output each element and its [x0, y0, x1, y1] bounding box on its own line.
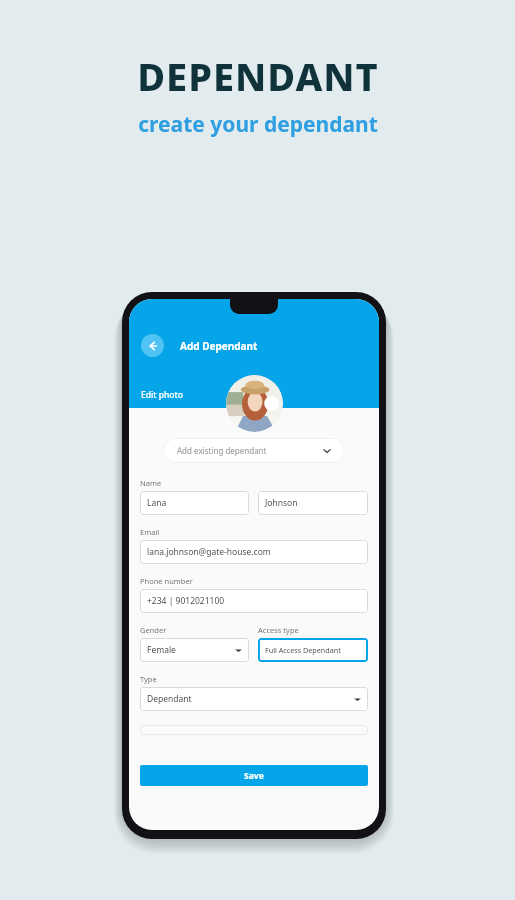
staticText: Name — [140, 478, 162, 488]
staticText: lana.johnson@gate-house.com — [147, 546, 271, 558]
button[interactable]: Full Access Dependant — [258, 638, 368, 662]
staticText: Type — [140, 674, 157, 684]
staticText: Add existing dependant — [177, 445, 267, 456]
staticText: Gender — [140, 625, 167, 635]
staticText: Save — [244, 770, 264, 782]
staticText: Edit photo — [141, 389, 184, 401]
staticText: Phone number — [140, 576, 193, 586]
button[interactable]: +234 | 9012021100 — [140, 589, 368, 613]
button[interactable]: Profile photo — [226, 375, 283, 432]
staticText: Dependant — [147, 693, 192, 705]
staticText: Email — [140, 527, 160, 537]
button[interactable]: Save — [140, 765, 368, 786]
button[interactable]: Dependant — [140, 687, 368, 711]
button[interactable]: Female — [140, 638, 249, 662]
button[interactable]: Johnson — [258, 491, 368, 515]
staticText: Lana — [147, 497, 167, 509]
staticText: Johnson — [265, 497, 298, 509]
button[interactable]: lana.johnson@gate-house.com — [140, 540, 368, 564]
staticText: create your dependant — [138, 110, 378, 139]
staticText: DEPENDANT — [137, 50, 379, 102]
staticText: +234 | 9012021100 — [147, 595, 225, 607]
button[interactable]: Edit photo — [141, 389, 184, 401]
button[interactable]: Lana — [140, 491, 249, 515]
button[interactable]: Back — [141, 334, 164, 357]
staticText: Full Access Dependant — [265, 645, 341, 655]
button[interactable]: Add existing dependant — [163, 438, 345, 463]
staticText: Access type — [258, 625, 299, 635]
staticText: Female — [147, 644, 176, 656]
staticText: Add Dependant — [180, 339, 258, 353]
